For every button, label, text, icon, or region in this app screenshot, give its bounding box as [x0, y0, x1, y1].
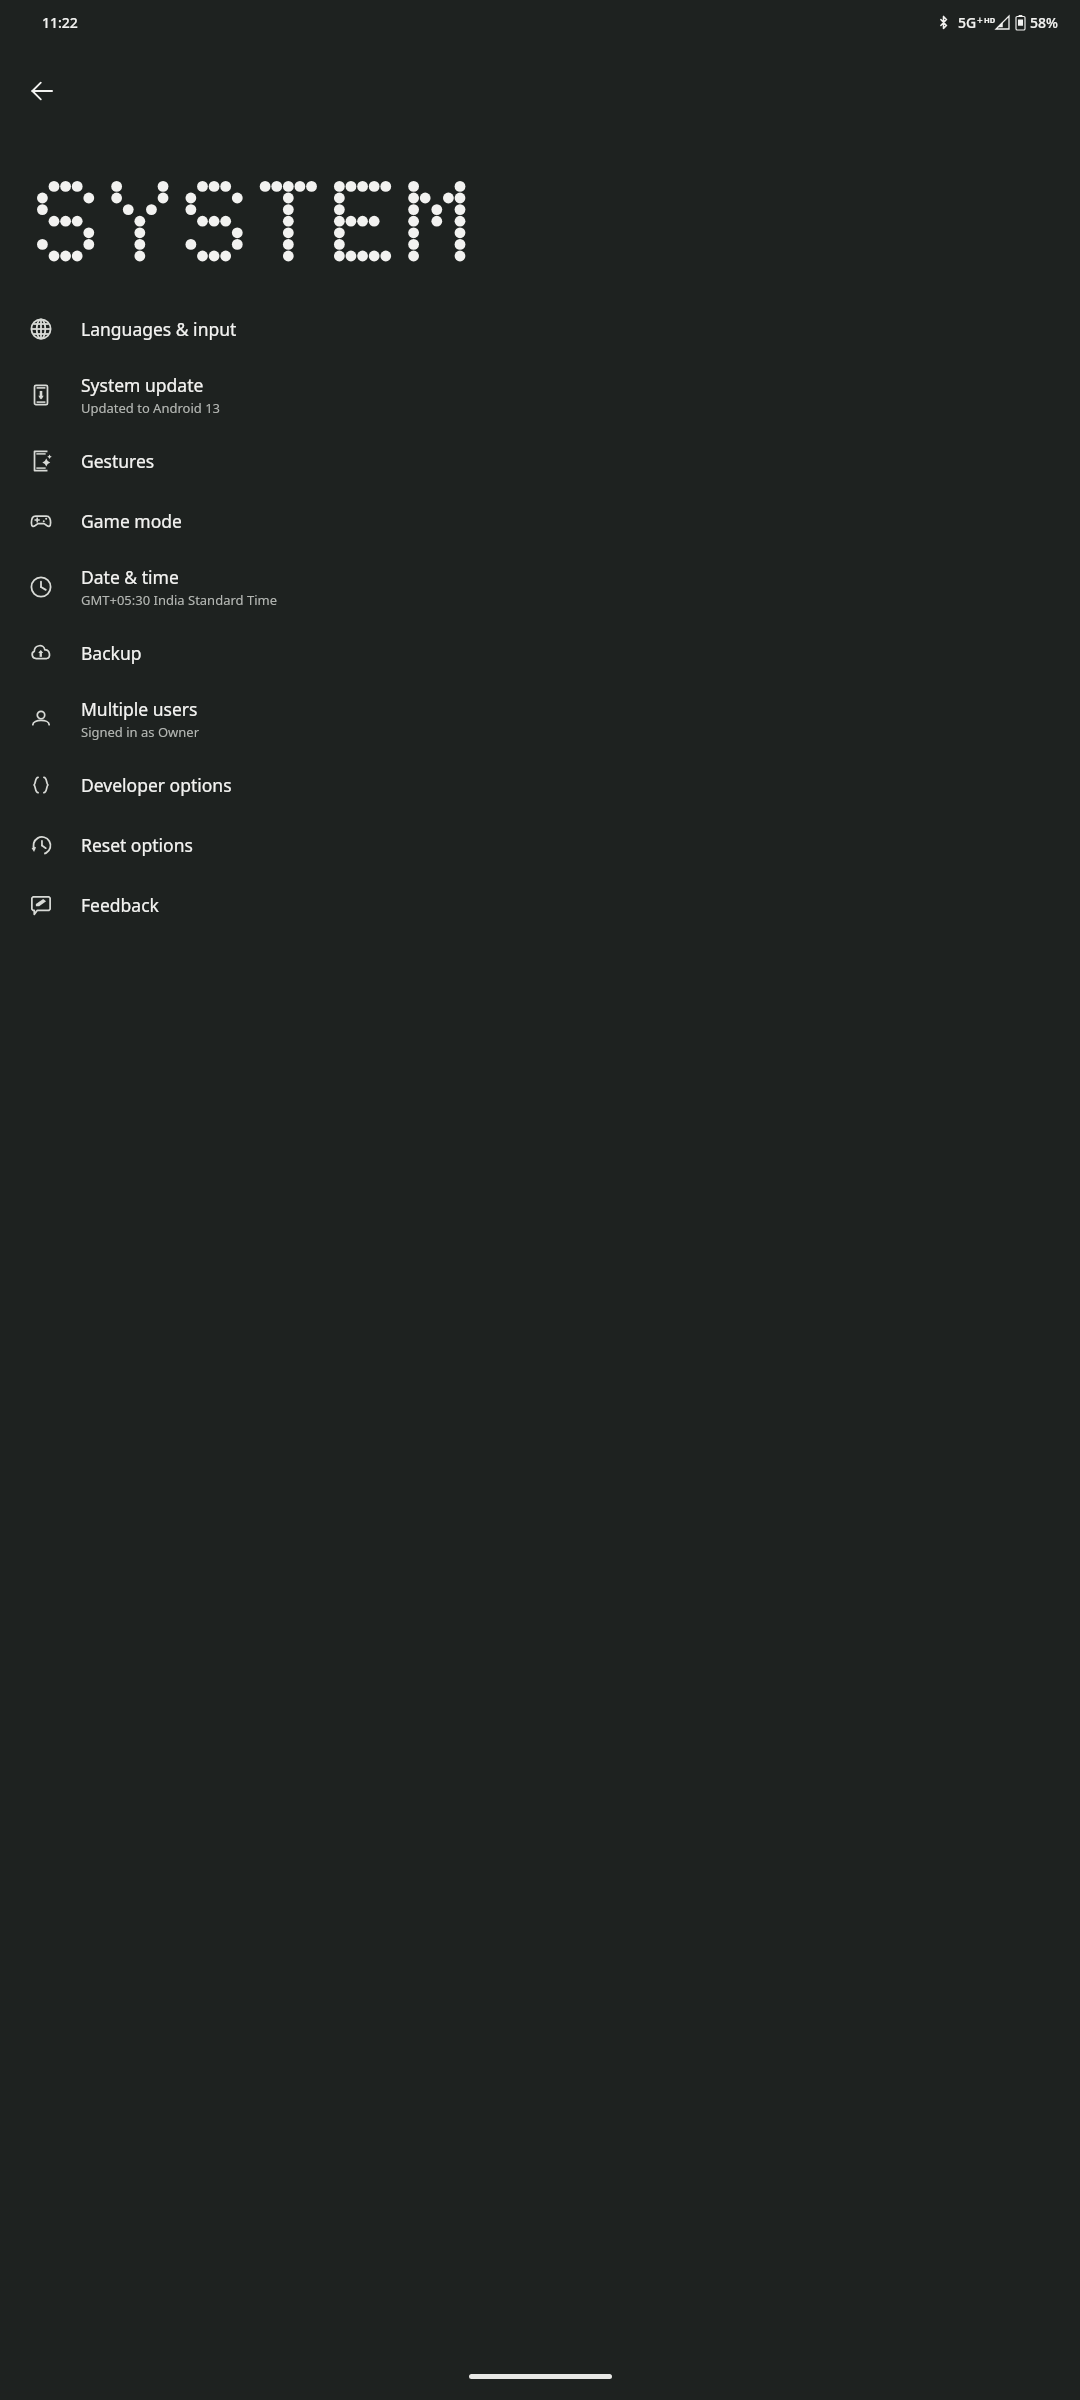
staticText: Developer options [81, 773, 232, 797]
button[interactable]: Backup [0, 623, 1080, 683]
button[interactable]: System update [0, 359, 1080, 431]
staticText: GMT+05:30 India Standard Time [81, 591, 277, 609]
staticText: Gestures [81, 449, 155, 473]
staticText: Languages & input [81, 317, 237, 341]
staticText: + [977, 13, 983, 27]
staticText: Reset options [81, 833, 193, 857]
staticText: Multiple users [81, 697, 198, 721]
button[interactable]: Date & time [0, 551, 1080, 623]
staticText: System update [81, 373, 204, 397]
button[interactable]: Reset options [0, 815, 1080, 875]
button[interactable]: Feedback [0, 875, 1080, 935]
staticText: Date & time [81, 565, 179, 589]
staticText: Feedback [81, 893, 159, 917]
button[interactable]: Developer options [0, 755, 1080, 815]
button[interactable]: Gestures [0, 431, 1080, 491]
button[interactable]: Languages & input [0, 299, 1080, 359]
button[interactable]: Game mode [0, 491, 1080, 551]
staticText: Game mode [81, 509, 182, 533]
staticText: Updated to Android 13 [81, 399, 221, 417]
staticText: Backup [81, 641, 142, 665]
staticText: 58% [1030, 13, 1058, 32]
staticText: HD [984, 15, 996, 25]
staticText: Signed in as Owner [81, 723, 200, 741]
button[interactable]: Back [14, 63, 70, 119]
button[interactable]: Multiple users [0, 683, 1080, 755]
staticText: 5G [958, 13, 977, 32]
staticText: 11:22 [42, 13, 78, 32]
